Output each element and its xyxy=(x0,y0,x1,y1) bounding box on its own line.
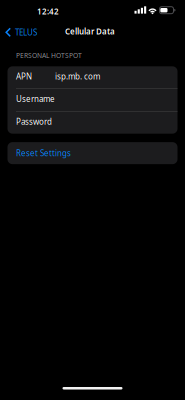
button[interactable]: Username xyxy=(7,89,177,111)
button[interactable]: Password xyxy=(7,112,177,134)
staticText: Cellular Data xyxy=(65,26,115,37)
staticText: PERSONAL HOTSPOT xyxy=(16,51,82,60)
staticText: 12:42 xyxy=(37,6,59,17)
button[interactable]: Reset Settings xyxy=(7,142,177,164)
staticText: isp.mb. com xyxy=(55,71,100,82)
staticText: APN xyxy=(16,71,32,82)
button[interactable]: APN xyxy=(7,66,177,88)
staticText: TELUS xyxy=(15,27,37,38)
staticText: Reset Settings xyxy=(16,148,71,158)
staticText: Username xyxy=(16,94,55,104)
button[interactable]: Back xyxy=(0,22,37,43)
staticText: Password xyxy=(16,116,52,127)
